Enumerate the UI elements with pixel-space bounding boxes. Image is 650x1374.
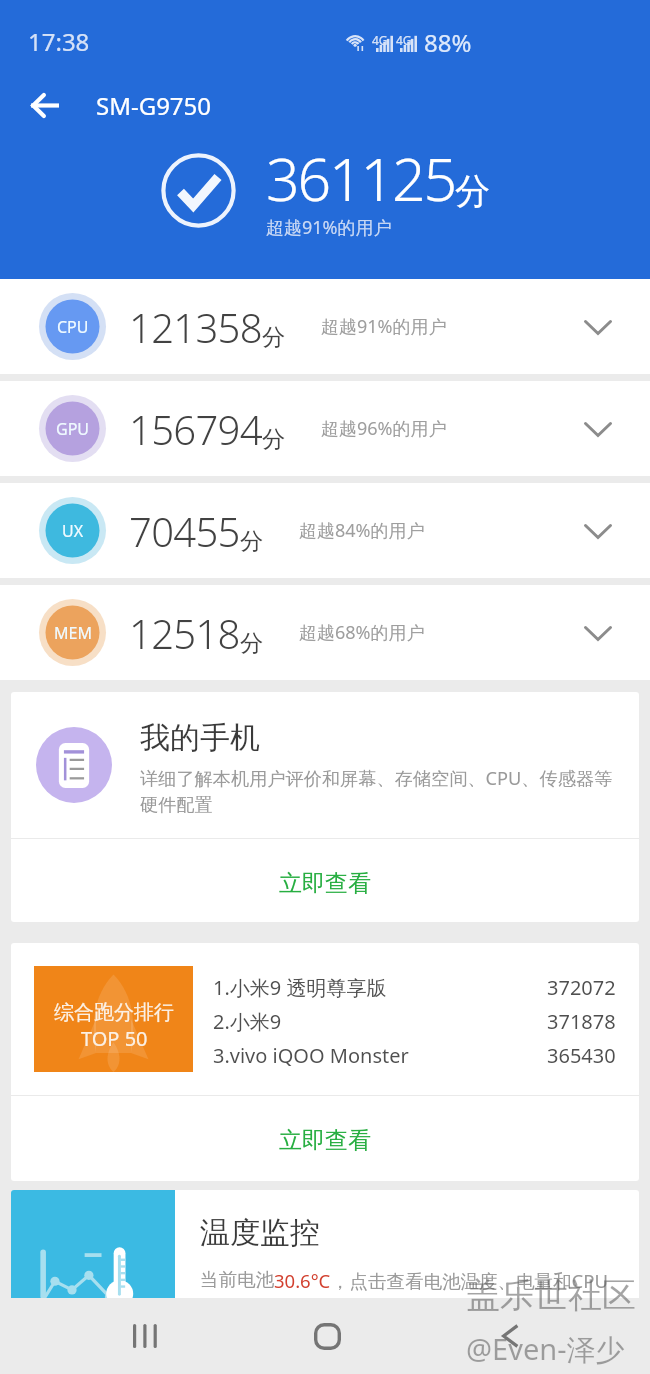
button[interactable]: Expand (570, 605, 626, 661)
staticText: 详细了解本机用户评价和屏幕、存储空间、CPU、传感器等硬件配置 (140, 766, 621, 817)
button[interactable]: Expand (570, 299, 626, 355)
staticText: MEM (54, 622, 92, 644)
button[interactable]: Expand (570, 503, 626, 559)
staticText: 1.小米9 透明尊享版 (213, 974, 387, 1001)
staticText: 超越68%的用户 (299, 620, 425, 645)
staticText: 分 (240, 527, 263, 556)
staticText: 2.小米9 (213, 1008, 282, 1035)
staticText: 温度监控 (200, 1214, 320, 1252)
staticText: 17:38 (28, 25, 90, 58)
staticText: ，点击查看电池温度、电量和CPU (331, 1268, 608, 1293)
button[interactable]: GPU (0, 381, 650, 476)
button[interactable]: Recents (111, 1302, 179, 1370)
staticText: 88% (424, 26, 472, 59)
button[interactable]: Back (476, 1302, 544, 1370)
staticText: 156794 (129, 402, 262, 456)
staticText: GPU (56, 418, 90, 440)
button[interactable]: 立即查看 (11, 839, 639, 922)
staticText: 立即查看 (279, 1126, 371, 1155)
staticText: 分 (262, 425, 285, 454)
staticText: 超越91%的用户 (321, 314, 447, 339)
button[interactable]: Home (293, 1302, 361, 1370)
button[interactable]: 立即查看 (11, 1096, 639, 1181)
staticText: 超越91%的用户 (266, 215, 392, 240)
staticText: 12518 (129, 606, 240, 660)
staticText: 立即查看 (279, 869, 371, 898)
staticText: TOP 50 (81, 1025, 148, 1052)
staticText: CPU (57, 316, 89, 338)
staticText: 372072 (547, 974, 616, 1001)
button[interactable]: MEM (0, 585, 650, 680)
staticText: 综合跑分排行 (54, 1000, 174, 1025)
button[interactable]: Expand (570, 401, 626, 457)
button[interactable]: Back (18, 79, 72, 131)
button[interactable]: CPU (0, 279, 650, 374)
button[interactable]: 综合跑分排行 (11, 943, 639, 1095)
staticText: 分 (262, 323, 285, 352)
staticText: 70455 (129, 504, 240, 558)
button[interactable]: 温度监控 (11, 1190, 639, 1340)
staticText: 超越84%的用户 (299, 518, 425, 543)
staticText: 我的手机 (140, 719, 260, 757)
staticText: 分 (455, 169, 490, 213)
staticText: 当前电池 (200, 1268, 274, 1291)
staticText: 365430 (547, 1042, 616, 1069)
staticText: 30.6°C (274, 1268, 331, 1293)
staticText: 分 (240, 629, 263, 658)
staticText: 超越96%的用户 (321, 416, 447, 441)
staticText: 361125 (266, 138, 455, 218)
staticText: 4G (372, 32, 388, 48)
staticText: 4G (396, 32, 412, 48)
button[interactable]: 我的手机 (11, 692, 639, 838)
button[interactable]: UX (0, 483, 650, 578)
staticText: 371878 (547, 1008, 616, 1035)
staticText: 121358 (129, 300, 262, 354)
staticText: 3.vivo iQOO Monster (213, 1042, 409, 1069)
staticText: SM-G9750 (96, 89, 212, 122)
staticText: 盖乐世社区 (466, 1274, 636, 1317)
staticText: @Even-泽少 (466, 1329, 625, 1369)
staticText: UX (62, 520, 84, 542)
